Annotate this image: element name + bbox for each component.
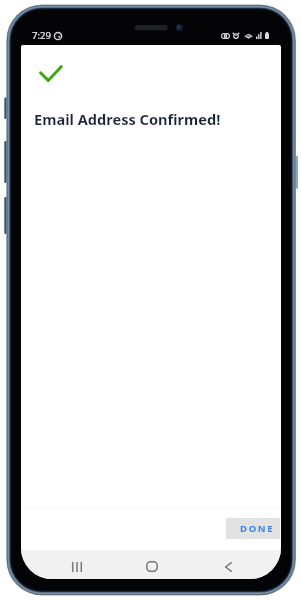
button[interactable]: Recent apps [62,552,92,579]
staticText: 7:29 [32,29,52,42]
staticText: Email Address Confirmed! [34,109,221,129]
button[interactable]: Home [137,552,167,579]
staticText: DONE [240,522,275,535]
button[interactable]: Back [213,552,243,579]
button[interactable]: DONE [226,518,280,539]
